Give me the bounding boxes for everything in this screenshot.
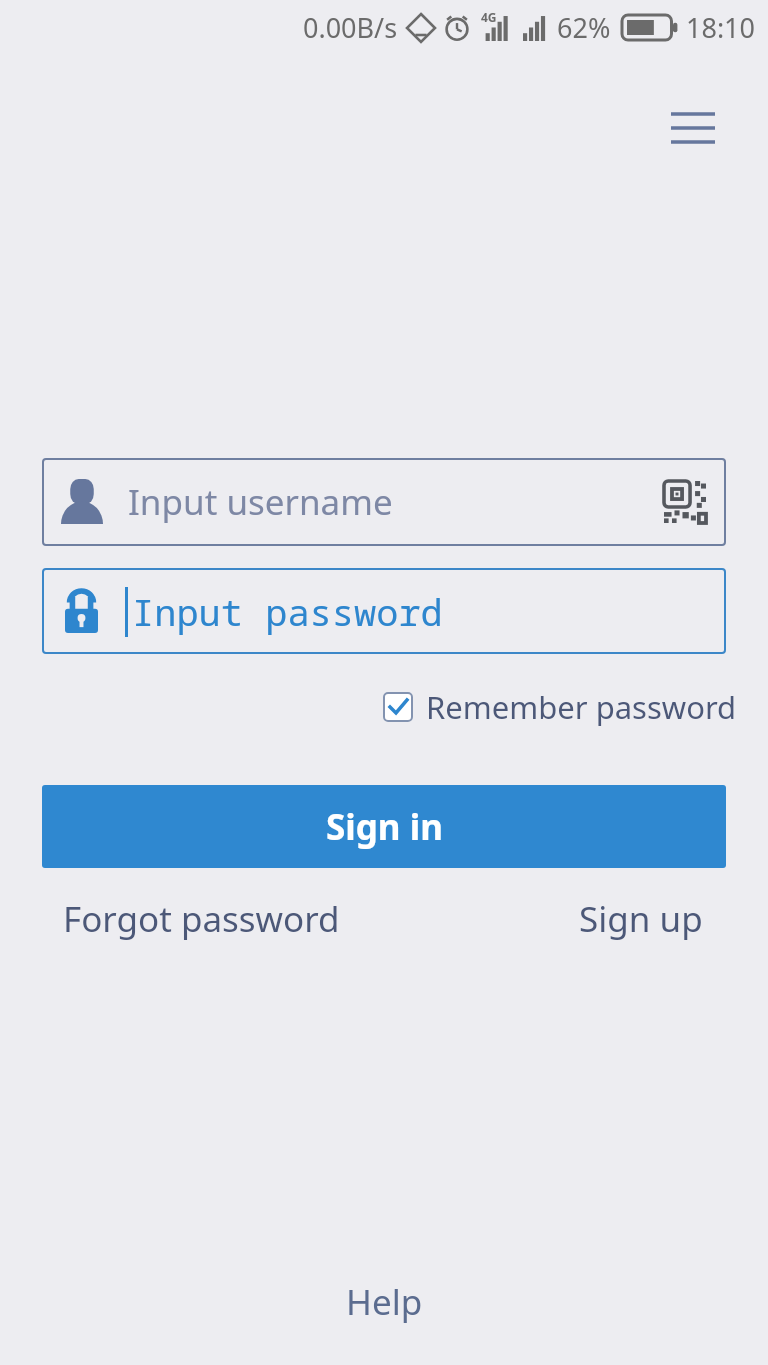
staticText: Input username [128, 478, 393, 526]
button[interactable]: Input password [42, 568, 726, 654]
button[interactable]: Sign in [42, 785, 726, 868]
button[interactable]: Input username [42, 458, 726, 546]
staticText: 18:10 [686, 9, 756, 46]
staticText: Input password [132, 586, 443, 636]
staticText: 4G [481, 9, 497, 25]
button[interactable]: Remember password [383, 686, 737, 728]
button[interactable]: Help [346, 1278, 423, 1326]
button[interactable]: Forgot password [63, 895, 340, 943]
button[interactable] [660, 98, 726, 160]
staticText: 0.00B/s [303, 9, 398, 46]
staticText: 62% [557, 9, 611, 46]
button[interactable]: Sign up [579, 895, 703, 943]
staticText: Sign in [326, 803, 443, 851]
staticText: Remember password [426, 686, 737, 728]
